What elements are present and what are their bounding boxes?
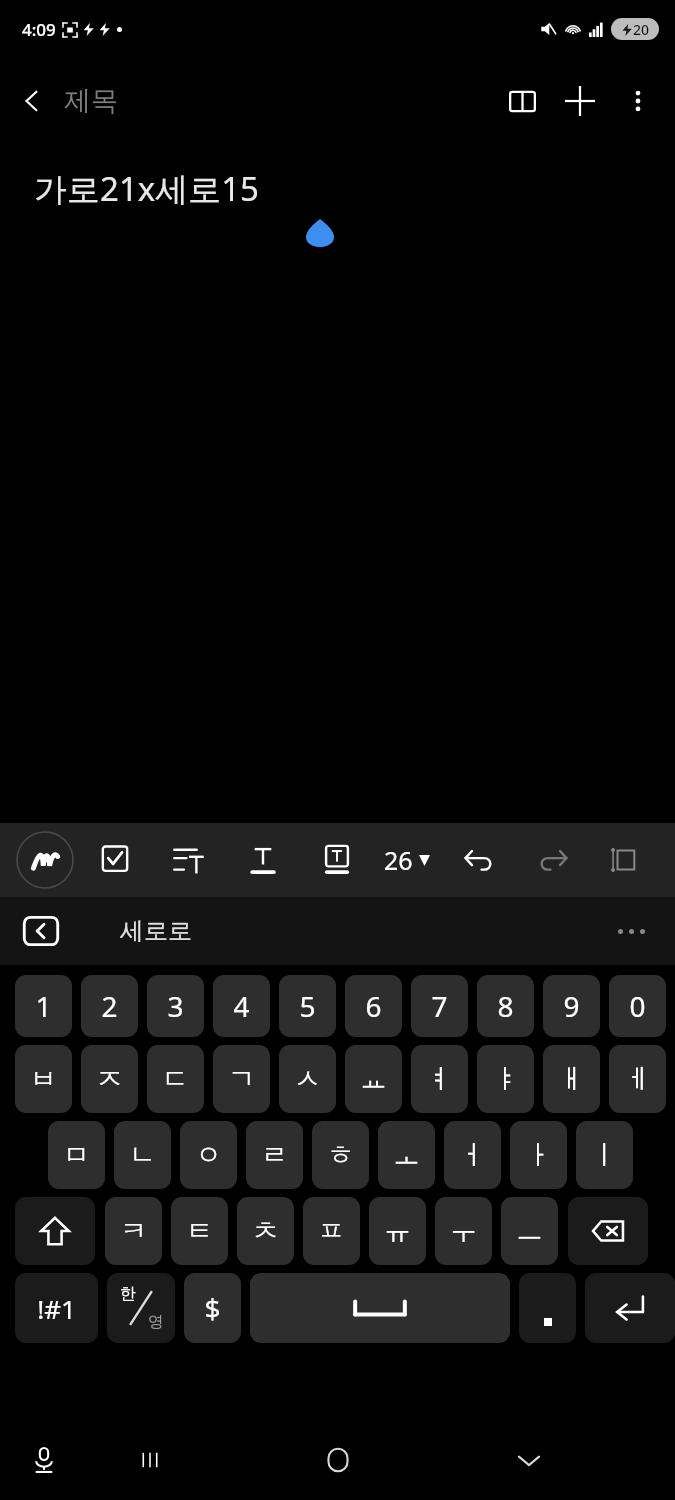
staticText: ㅕ [426,1062,453,1096]
staticText: ㅑ [492,1062,519,1096]
staticText: ㅍ [318,1214,345,1248]
staticText: ㅜ [450,1214,477,1248]
button[interactable]: 4 [213,975,270,1037]
button[interactable]: Backspace [568,1197,648,1265]
button[interactable]: Add [551,72,609,130]
button[interactable]: 1 [15,975,72,1037]
button[interactable]: ㅠ [369,1197,426,1265]
button[interactable]: 9 [543,975,600,1037]
staticText: ㄹ [261,1138,288,1172]
staticText: 5 [299,987,316,1025]
button[interactable]: ㅕ [411,1045,468,1113]
button[interactable]: Handwriting [16,831,74,889]
staticText: ㅋ [120,1214,147,1248]
button[interactable]: !#1 [15,1273,98,1343]
button[interactable]: 3 [147,975,204,1037]
button[interactable]: Text box [314,837,360,883]
button[interactable]: 0 [609,975,666,1037]
button[interactable]: 7 [411,975,468,1037]
button[interactable]: ㅣ [576,1121,633,1189]
button[interactable]: 2 [81,975,138,1037]
button[interactable]: ㅓ [444,1121,501,1189]
staticText: 26 [384,843,413,877]
button[interactable]: Voice input [18,1434,70,1486]
button[interactable]: Home [308,1430,368,1490]
button[interactable]: 6 [345,975,402,1037]
staticText: 영 [148,1312,164,1332]
button[interactable]: 5 [279,975,336,1037]
staticText: 8 [497,987,514,1025]
button[interactable]: ㅇ [180,1121,237,1189]
button[interactable]: ㅗ [378,1121,435,1189]
staticText: 0 [629,987,646,1025]
button[interactable]: ㅁ [48,1121,105,1189]
button[interactable]: ㄱ [213,1045,270,1113]
staticText: 4 [233,987,250,1025]
staticText: 20 [633,20,650,39]
staticText: ㅐ [558,1062,585,1096]
button[interactable]: ㅏ [510,1121,567,1189]
button[interactable]: ㅍ [303,1197,360,1265]
button[interactable]: ㅋ [105,1197,162,1265]
staticText: ㅇ [195,1138,222,1172]
staticText: ㅔ [624,1062,651,1096]
button[interactable]: Redo [530,837,576,883]
button[interactable]: 26 [380,843,434,877]
staticText: 4:09 [22,18,56,41]
staticText: ㄷ [162,1062,189,1096]
button[interactable]: Hide keyboard [501,1432,557,1488]
button[interactable]: More options [609,72,667,130]
button[interactable]: ㅐ [543,1045,600,1113]
button[interactable]: Korean English toggle [107,1273,175,1343]
staticText: ㅌ [186,1214,213,1248]
staticText: ㅡ [516,1214,543,1248]
button[interactable]: ㅡ [501,1197,558,1265]
button[interactable]: Space [250,1273,510,1343]
button[interactable]: ㄷ [147,1045,204,1113]
staticText: ㅎ [327,1138,354,1172]
button[interactable] [519,1273,576,1343]
button[interactable]: ㅅ [279,1045,336,1113]
button[interactable]: ㅔ [609,1045,666,1113]
staticText: ㅂ [30,1062,57,1096]
button[interactable]: ㅜ [435,1197,492,1265]
button[interactable]: Back [0,69,64,133]
button[interactable]: Reading view [493,72,551,130]
button[interactable]: More suggestions [612,923,651,940]
staticText: 가로21x세로15 [34,166,259,211]
button[interactable]: ㅂ [15,1045,72,1113]
button[interactable]: ㅈ [81,1045,138,1113]
button[interactable]: ㅎ [312,1121,369,1189]
staticText: ㄴ [129,1138,156,1172]
staticText: ㅈ [96,1062,123,1096]
staticText: ㅓ [459,1138,486,1172]
staticText: !#1 [37,1291,76,1326]
button[interactable]: Undo [456,837,502,883]
button[interactable]: 세로로 [110,910,202,952]
button[interactable]: ㅛ [345,1045,402,1113]
button[interactable]: Recent apps [122,1432,178,1488]
staticText: $ [204,1289,221,1327]
staticText: 2 [101,987,118,1025]
button[interactable]: Paragraph style [166,837,212,883]
button[interactable]: ㅌ [171,1197,228,1265]
staticText: ㅛ [360,1062,387,1096]
button[interactable]: Previous suggestions [22,912,60,950]
button[interactable]: ㅊ [237,1197,294,1265]
button[interactable]: Insert [602,840,642,880]
button[interactable]: ㅑ [477,1045,534,1113]
staticText: 제목 [64,84,118,118]
button[interactable]: Enter [585,1273,675,1343]
button[interactable]: ㄴ [114,1121,171,1189]
button[interactable]: 8 [477,975,534,1037]
staticText: ㅣ [591,1138,618,1172]
button[interactable]: ㄹ [246,1121,303,1189]
button[interactable]: Text format [240,837,286,883]
staticText: 한 [120,1284,136,1304]
staticText: ㄱ [228,1062,255,1096]
button[interactable]: Checklist [92,837,138,883]
button[interactable]: $ [184,1273,241,1343]
button[interactable]: Shift [15,1197,95,1265]
staticText: 7 [431,987,448,1025]
staticText: ㅏ [525,1138,552,1172]
